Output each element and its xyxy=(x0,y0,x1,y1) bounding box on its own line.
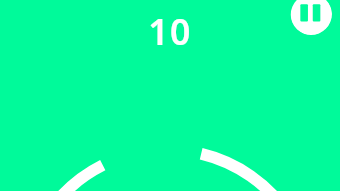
button[interactable]: Pause xyxy=(290,0,332,35)
staticText: 10 xyxy=(140,7,200,53)
